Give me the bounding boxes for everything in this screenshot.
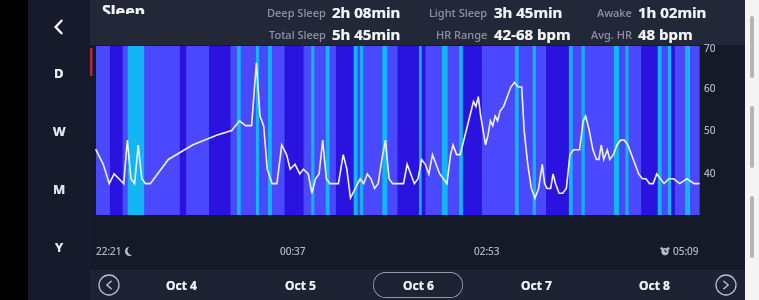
staticText: 42-68 bpm xyxy=(494,24,571,44)
staticText: 22:21 xyxy=(96,244,122,258)
staticText: Oct 6 xyxy=(403,277,434,293)
staticText: HR Range xyxy=(436,27,488,42)
button[interactable]: Oct 4 xyxy=(136,272,227,298)
button[interactable]: W xyxy=(28,102,90,160)
button[interactable]: Back xyxy=(46,14,72,40)
staticText: 40 xyxy=(704,166,716,180)
staticText: 5h 45min xyxy=(332,24,401,44)
staticText: 1h 02min xyxy=(638,2,707,22)
staticText: 60 xyxy=(704,81,716,95)
button[interactable]: Oct 6 xyxy=(373,272,463,298)
button[interactable]: Next day xyxy=(713,272,739,298)
staticText: Y xyxy=(55,238,64,256)
button[interactable]: Oct 8 xyxy=(609,272,699,298)
button[interactable]: Oct 7 xyxy=(491,272,581,298)
staticText: Total Sleep xyxy=(269,27,326,42)
staticText: Avg. HR xyxy=(591,27,632,42)
staticText: 3h 45min xyxy=(494,2,563,22)
staticText: Oct 5 xyxy=(285,277,316,293)
staticText: W xyxy=(53,122,66,140)
staticText: 02:53 xyxy=(474,244,500,258)
staticText: 2h 08min xyxy=(332,2,401,22)
button[interactable]: Y xyxy=(28,218,90,276)
staticText: D xyxy=(54,64,64,82)
staticText: 48 bpm xyxy=(638,24,693,44)
staticText: Deep Sleep xyxy=(267,5,326,20)
staticText: 05:09 xyxy=(673,244,699,258)
staticText: Awake xyxy=(597,5,632,20)
staticText: Oct 7 xyxy=(521,277,552,293)
staticText: Light Sleep xyxy=(429,5,488,20)
button[interactable]: D xyxy=(28,44,90,102)
button[interactable]: Previous day xyxy=(96,272,122,298)
staticText: 00:37 xyxy=(280,244,306,258)
staticText: Sleep xyxy=(102,0,145,14)
button[interactable]: M xyxy=(28,160,90,218)
button[interactable]: Oct 5 xyxy=(255,272,345,298)
staticText: 70 xyxy=(704,41,716,55)
staticText: Oct 4 xyxy=(166,277,197,293)
staticText: Oct 8 xyxy=(639,277,670,293)
staticText: M xyxy=(53,180,66,198)
staticText: 50 xyxy=(704,123,716,137)
